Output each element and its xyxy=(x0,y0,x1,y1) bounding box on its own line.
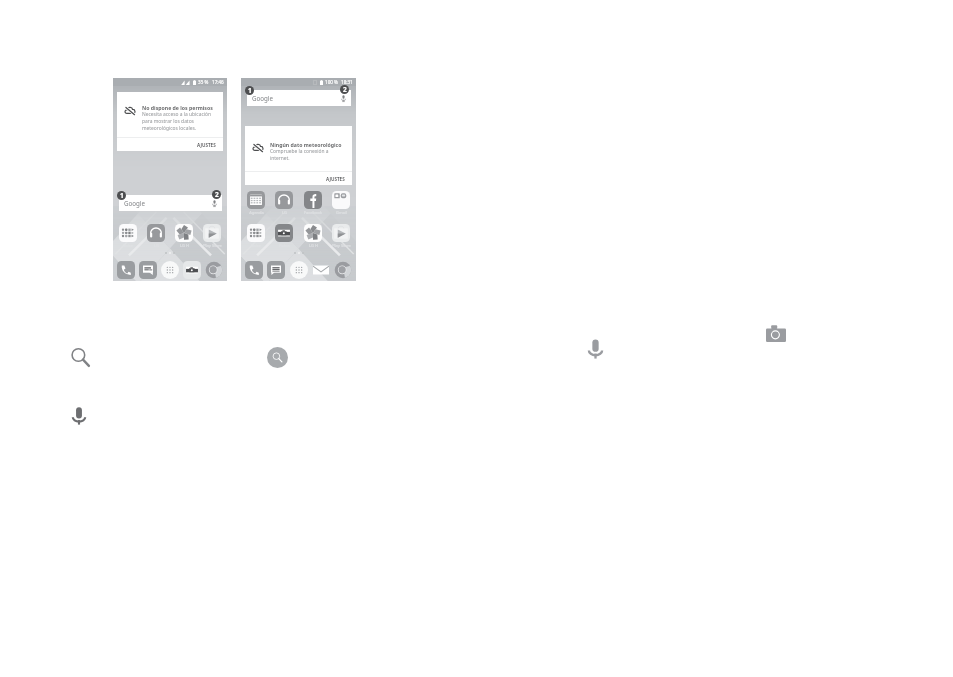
staticText: Play Store xyxy=(203,243,222,248)
button[interactable]: Google xyxy=(247,90,351,106)
staticText: LG H xyxy=(309,243,318,248)
staticText: 1 xyxy=(248,86,252,95)
button[interactable]: Phone xyxy=(117,261,135,279)
button[interactable]: Play Store xyxy=(202,224,222,248)
button[interactable]: Mail xyxy=(312,261,330,279)
button[interactable]: All apps xyxy=(161,261,179,279)
button[interactable]: Messages xyxy=(267,261,285,279)
button[interactable]: Voice xyxy=(246,224,266,248)
staticText: internet. xyxy=(270,155,290,162)
button[interactable]: Gmail xyxy=(331,191,351,215)
staticText: Gmail xyxy=(336,210,347,215)
staticText: meteorológicos locales. xyxy=(142,125,197,132)
button[interactable]: Chrome xyxy=(205,261,223,279)
button[interactable]: No dispone de los permisos xyxy=(117,92,223,151)
staticText: 1 xyxy=(120,191,124,200)
button[interactable]: Phone xyxy=(245,261,263,279)
button[interactable]: Play Store xyxy=(331,224,351,248)
button[interactable]: Ningún dato meteorológico xyxy=(245,126,352,185)
button[interactable]: Chrome xyxy=(334,261,352,279)
staticText: 100 % xyxy=(325,79,338,85)
staticText: AJUSTES xyxy=(197,142,216,148)
button[interactable]: Voice search xyxy=(72,406,86,425)
staticText: LG H xyxy=(180,243,189,248)
button[interactable]: Camera xyxy=(766,325,786,342)
staticText: AJUSTES xyxy=(326,176,345,182)
button[interactable]: Facebook xyxy=(303,191,323,215)
staticText: 2 xyxy=(215,190,219,199)
button[interactable]: LG H xyxy=(174,224,194,248)
button[interactable]: All apps xyxy=(290,261,308,279)
staticText: Agenda xyxy=(249,210,264,215)
button[interactable]: Google xyxy=(119,195,222,211)
button[interactable]: Agenda xyxy=(246,191,266,215)
staticText: Play Store xyxy=(332,243,351,248)
staticText: Compruebe la conexión a xyxy=(270,148,329,155)
button[interactable]: Messages xyxy=(139,261,157,279)
button[interactable]: Search xyxy=(267,347,288,368)
staticText: No dispone de los permisos xyxy=(142,104,213,111)
staticText: Google xyxy=(252,94,273,102)
button[interactable]: Fotos xyxy=(274,224,294,248)
button[interactable]: Search xyxy=(70,347,91,368)
button[interactable]: Microphone xyxy=(588,338,603,359)
staticText: Necesita acceso a la ubicación xyxy=(142,111,212,118)
staticText: Facebook xyxy=(304,210,322,215)
button[interactable]: Camera xyxy=(183,261,201,279)
staticText: LG xyxy=(282,210,287,215)
button[interactable]: Voice xyxy=(118,224,138,248)
staticText: 18:31 xyxy=(341,79,353,85)
button[interactable]: LG xyxy=(274,191,294,215)
staticText: 35 % xyxy=(198,79,209,85)
staticText: 17:46 xyxy=(212,79,224,85)
staticText: Ningún dato meteorológico xyxy=(270,141,342,148)
button[interactable]: LG H xyxy=(303,224,323,248)
staticText: Google xyxy=(124,199,145,207)
staticText: para mostrar los datos xyxy=(142,118,194,125)
button[interactable]: LG xyxy=(146,224,166,248)
staticText: 2 xyxy=(343,85,347,94)
